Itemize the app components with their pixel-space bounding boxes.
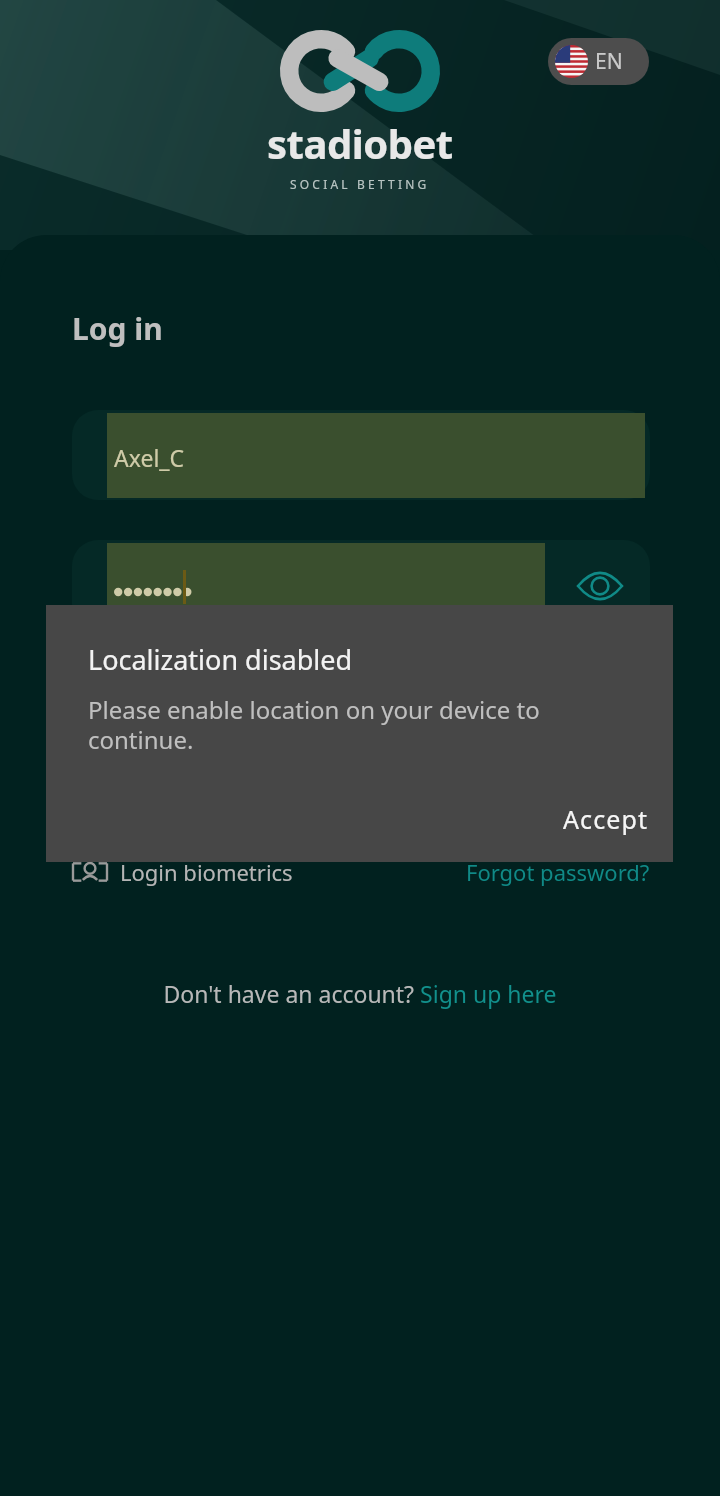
- button[interactable]: [72, 540, 650, 630]
- button[interactable]: Don't have an account? Sign up here: [163, 978, 557, 1009]
- staticText: SOCIAL BETTING: [290, 176, 430, 192]
- staticText: Login biometrics: [120, 857, 293, 887]
- staticText: stadiobet: [267, 116, 453, 170]
- button[interactable]: Forgot password?: [466, 857, 650, 887]
- button[interactable]: Show password: [566, 552, 634, 620]
- staticText: Please enable location on your device to…: [88, 693, 588, 756]
- staticText: Log in: [72, 308, 163, 349]
- staticText: EN: [595, 47, 623, 76]
- staticText: Forgot password?: [466, 857, 650, 887]
- staticText: Localization disabled: [88, 641, 353, 678]
- button[interactable]: Select language English: [548, 38, 649, 85]
- staticText: Don't have an account? Sign up here: [163, 978, 557, 1009]
- staticText: Axel_C: [114, 442, 185, 473]
- button[interactable]: Accept: [549, 794, 663, 844]
- staticText: Accept: [563, 802, 649, 836]
- button[interactable]: [72, 410, 650, 500]
- button[interactable]: Login biometrics: [72, 854, 299, 890]
